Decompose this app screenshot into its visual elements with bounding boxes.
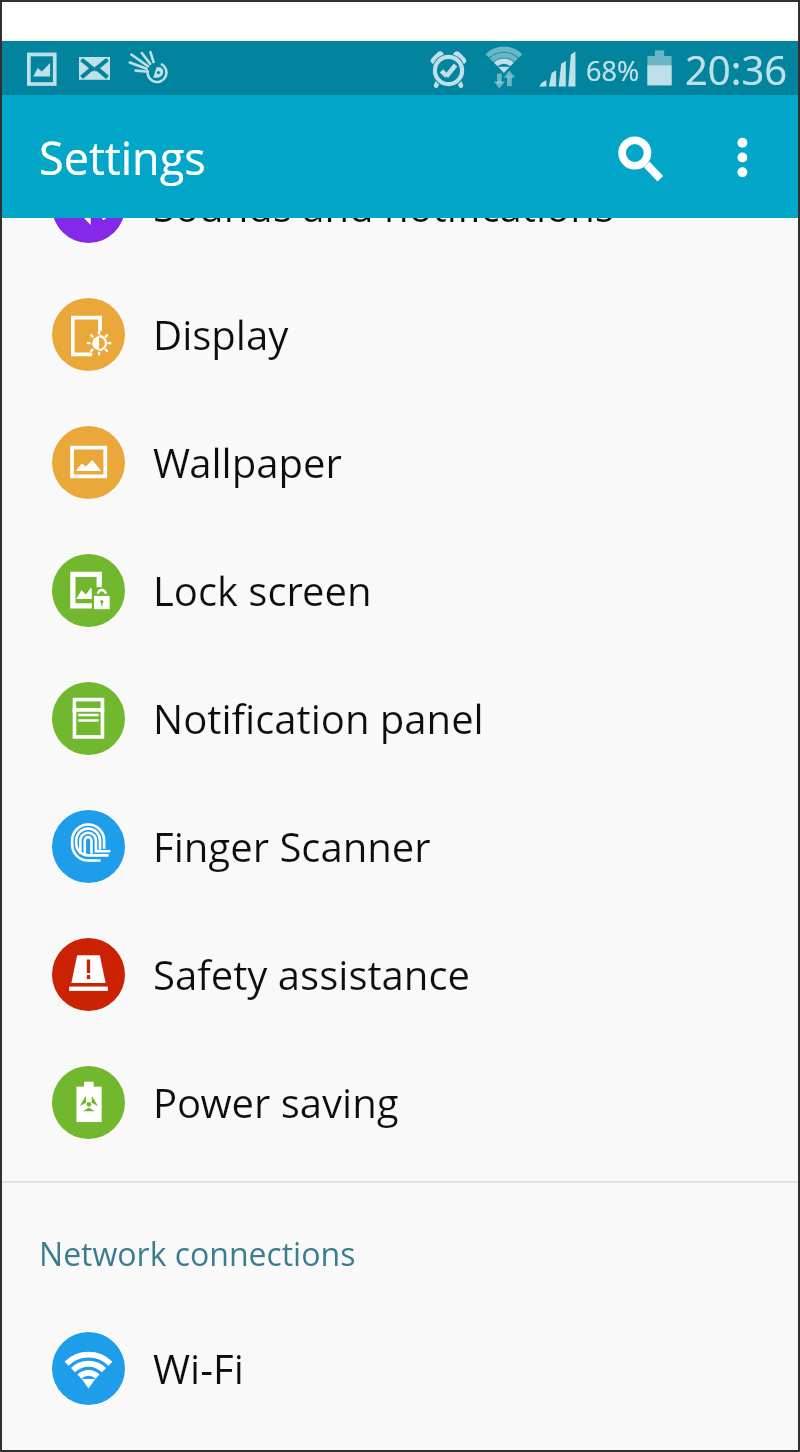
staticText: Finger Scanner (153, 819, 431, 873)
button[interactable]: Wallpaper (2, 398, 798, 526)
button[interactable]: More options (698, 112, 788, 202)
staticText: 20:36 (685, 42, 788, 96)
button[interactable]: Sounds and notifications (2, 218, 798, 270)
staticText: Safety assistance (153, 947, 470, 1001)
button[interactable]: Finger Scanner (2, 782, 798, 910)
staticText: Lock screen (153, 563, 372, 617)
staticText: Display (153, 307, 289, 361)
button[interactable]: Notification panel (2, 654, 798, 782)
button[interactable]: Search (590, 112, 680, 202)
staticText: Settings (39, 127, 206, 188)
staticText: Wallpaper (153, 435, 342, 489)
staticText: Power saving (153, 1075, 399, 1129)
button[interactable]: Power saving (2, 1038, 798, 1166)
staticText: Wi-Fi (153, 1341, 244, 1395)
button[interactable]: Display (2, 270, 798, 398)
button[interactable]: Wi-Fi (2, 1304, 798, 1432)
staticText: 68% (586, 52, 640, 89)
staticText: Network connections (39, 1232, 356, 1276)
staticText: Sounds and notifications (153, 218, 614, 233)
button[interactable]: Lock screen (2, 526, 798, 654)
staticText: Notification panel (153, 691, 484, 745)
button[interactable]: Safety assistance (2, 910, 798, 1038)
